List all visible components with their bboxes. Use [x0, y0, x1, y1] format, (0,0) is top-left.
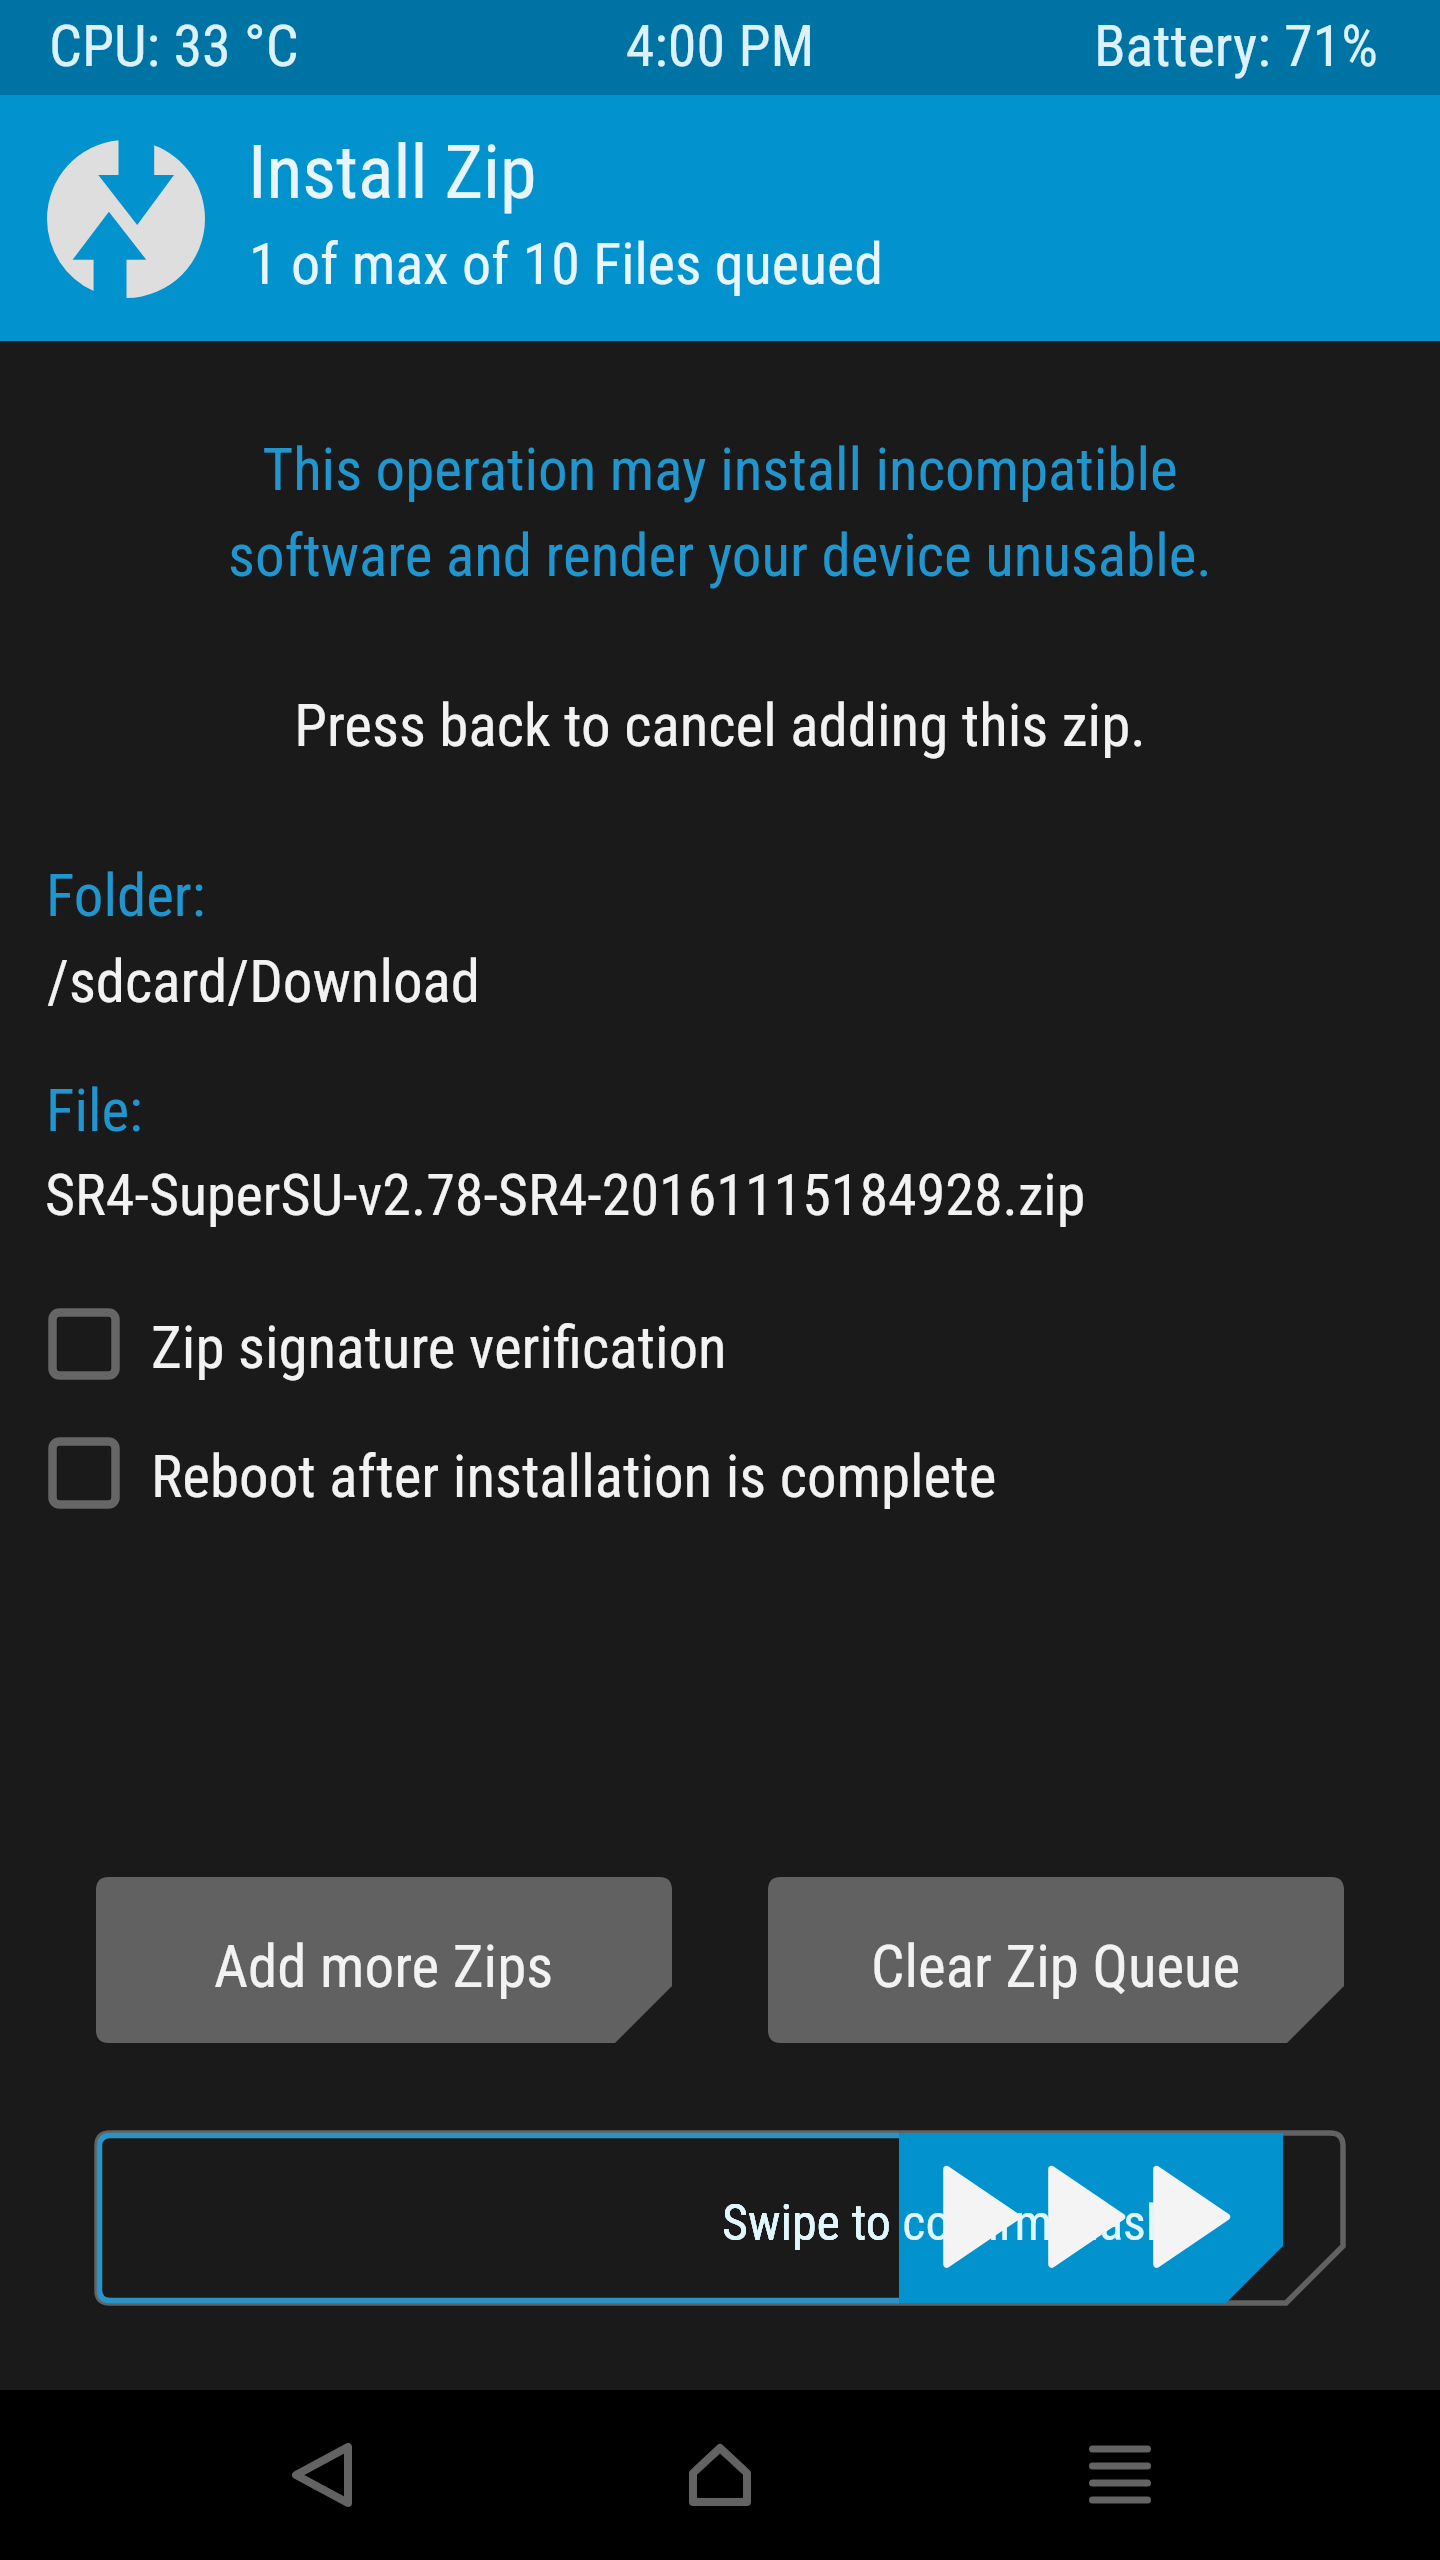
button[interactable]: Recent apps	[998, 2400, 1242, 2550]
staticText: File:	[46, 1076, 143, 1145]
staticText: Press back to cancel adding this zip.	[0, 691, 1440, 760]
button[interactable]: Back	[200, 2400, 444, 2550]
staticText: Reboot after installation is complete	[151, 1442, 997, 1511]
staticText: Clear Zip Queue	[871, 1932, 1241, 2001]
staticText: /sdcard/Download	[47, 947, 481, 1016]
staticText: 1 of max of 10 Files queued	[249, 230, 884, 298]
staticText: Swipe to confirm Flash	[722, 2194, 1171, 2253]
staticText: Swipe to confirm Flash	[722, 2194, 1171, 2253]
button[interactable]: Add more Zips	[96, 1877, 672, 2043]
staticText: CPU: 33 °C	[49, 12, 299, 80]
staticText: This operation may install incompatible …	[0, 435, 1440, 590]
staticText: Zip signature verification	[151, 1313, 727, 1382]
button[interactable]: Swipe to confirm Flash	[97, 2133, 1343, 2303]
staticText: 4:00 PM	[0, 12, 1440, 80]
button[interactable]: Zip signature verification	[34, 1294, 1134, 1394]
button[interactable]: Clear Zip Queue	[768, 1877, 1344, 2043]
staticText: Folder:	[46, 861, 206, 930]
staticText: Add more Zips	[214, 1932, 554, 2001]
button[interactable]: Home	[598, 2400, 842, 2550]
staticText: Install Zip	[248, 129, 537, 216]
staticText: Battery: 71%	[0, 12, 1378, 80]
staticText: SR4-SuperSU-v2.78-SR4-20161115184928.zip	[45, 1161, 1086, 1229]
button[interactable]: Reboot after installation is complete	[34, 1423, 1134, 1523]
